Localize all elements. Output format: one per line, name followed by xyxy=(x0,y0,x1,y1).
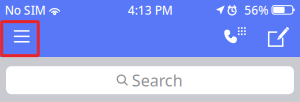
button[interactable]: Search xyxy=(6,66,294,94)
staticText: Search xyxy=(132,70,183,91)
staticText: No SIM xyxy=(5,2,46,18)
button[interactable]: Keypad xyxy=(223,26,248,48)
staticText: 4:13 PM xyxy=(128,2,173,18)
staticText: 56% xyxy=(244,2,268,18)
button[interactable]: Menu xyxy=(2,22,38,56)
button[interactable]: Compose xyxy=(268,26,289,47)
